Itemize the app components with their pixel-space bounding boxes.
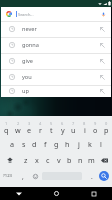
other: Insert give — [99, 58, 106, 65]
staticText: n — [78, 155, 83, 165]
button[interactable]: k — [84, 136, 95, 152]
staticText: 7 — [72, 121, 75, 126]
staticText: up — [22, 87, 29, 95]
button[interactable]: 5 — [46, 120, 57, 136]
button[interactable]: n — [75, 152, 86, 168]
staticText: u — [71, 125, 76, 135]
staticText: . — [91, 172, 93, 181]
button[interactable]: b — [64, 152, 75, 168]
button[interactable]: 4 — [35, 120, 46, 136]
staticText: you — [22, 73, 32, 81]
staticText: l — [100, 139, 102, 149]
staticText: h — [65, 139, 70, 149]
button[interactable]: 3 — [24, 120, 35, 136]
other: Voice search — [101, 11, 106, 18]
staticText: q — [4, 125, 9, 135]
staticText: o — [93, 125, 98, 135]
staticText: j — [78, 139, 80, 149]
staticText: e — [27, 125, 32, 135]
button[interactable]: Home — [38, 187, 75, 200]
other: Insert gonna — [99, 42, 106, 49]
button[interactable]: z — [20, 152, 31, 168]
other: Insert up — [99, 88, 106, 95]
button[interactable]: Emoji — [29, 168, 41, 184]
staticText: 5 — [50, 121, 53, 126]
button[interactable]: you — [1, 69, 111, 85]
button[interactable]: j — [73, 136, 84, 152]
staticText: p — [104, 125, 109, 135]
button[interactable]: c — [42, 152, 53, 168]
button[interactable]: 6 — [57, 120, 68, 136]
button[interactable]: s — [18, 136, 29, 152]
button[interactable]: a — [6, 136, 18, 152]
button[interactable]: 8 — [79, 120, 90, 136]
button[interactable]: give — [1, 53, 111, 69]
staticText: k — [88, 139, 92, 149]
button[interactable]: h — [62, 136, 73, 152]
button[interactable]: l — [95, 136, 106, 152]
button[interactable]: . — [83, 168, 100, 184]
staticText: 2 — [17, 121, 20, 126]
button[interactable]: ?123 — [0, 168, 16, 184]
staticText: 8 — [83, 121, 86, 126]
staticText: z — [24, 155, 28, 165]
other: Insert never — [99, 26, 106, 33]
staticText: s — [22, 139, 26, 149]
other: Insert you — [99, 74, 106, 81]
button[interactable]: 9 — [90, 120, 101, 136]
staticText: d — [32, 139, 37, 149]
staticText: b — [67, 155, 72, 165]
staticText: Search... — [18, 12, 34, 17]
staticText: 9 — [94, 121, 97, 126]
button[interactable]: Search... — [1, 7, 111, 21]
button[interactable]: 1 — [0, 120, 12, 136]
button[interactable]: 0 — [101, 120, 112, 136]
button[interactable]: , — [16, 168, 29, 184]
button[interactable]: Backspace — [97, 152, 112, 168]
staticText: 4 — [39, 121, 42, 126]
staticText: 6 — [61, 121, 64, 126]
button[interactable]: v — [53, 152, 64, 168]
button[interactable]: x — [31, 152, 42, 168]
staticText: never — [22, 25, 37, 33]
staticText: ?123 — [3, 173, 13, 179]
staticText: y — [61, 125, 65, 135]
staticText: a — [10, 139, 15, 149]
staticText: g — [54, 139, 59, 149]
staticText: r — [39, 125, 42, 135]
staticText: x — [35, 155, 39, 165]
staticText: w — [15, 125, 21, 135]
staticText: , — [22, 172, 24, 181]
button[interactable]: f — [40, 136, 51, 152]
staticText: t — [50, 125, 53, 135]
staticText: f — [44, 139, 47, 149]
staticText: v — [57, 155, 61, 165]
button[interactable]: Search — [100, 168, 112, 184]
staticText: 1 — [5, 121, 8, 126]
staticText: 0 — [105, 121, 108, 126]
button[interactable]: 2 — [12, 120, 24, 136]
button[interactable]: never — [1, 21, 111, 37]
button[interactable]: Back — [0, 187, 38, 200]
button[interactable]: d — [29, 136, 40, 152]
staticText: gonna — [22, 41, 39, 49]
staticText: c — [46, 155, 50, 165]
button[interactable]: up — [1, 85, 111, 97]
button[interactable]: Shift — [0, 152, 20, 168]
button[interactable]: Recents — [75, 187, 112, 200]
staticText: m — [88, 155, 95, 165]
staticText: 3 — [28, 121, 31, 126]
button[interactable]: m — [86, 152, 97, 168]
staticText: i — [84, 125, 86, 135]
button[interactable]: 7 — [68, 120, 79, 136]
button[interactable]: g — [51, 136, 62, 152]
staticText: give — [22, 57, 33, 65]
button[interactable]: gonna — [1, 37, 111, 53]
